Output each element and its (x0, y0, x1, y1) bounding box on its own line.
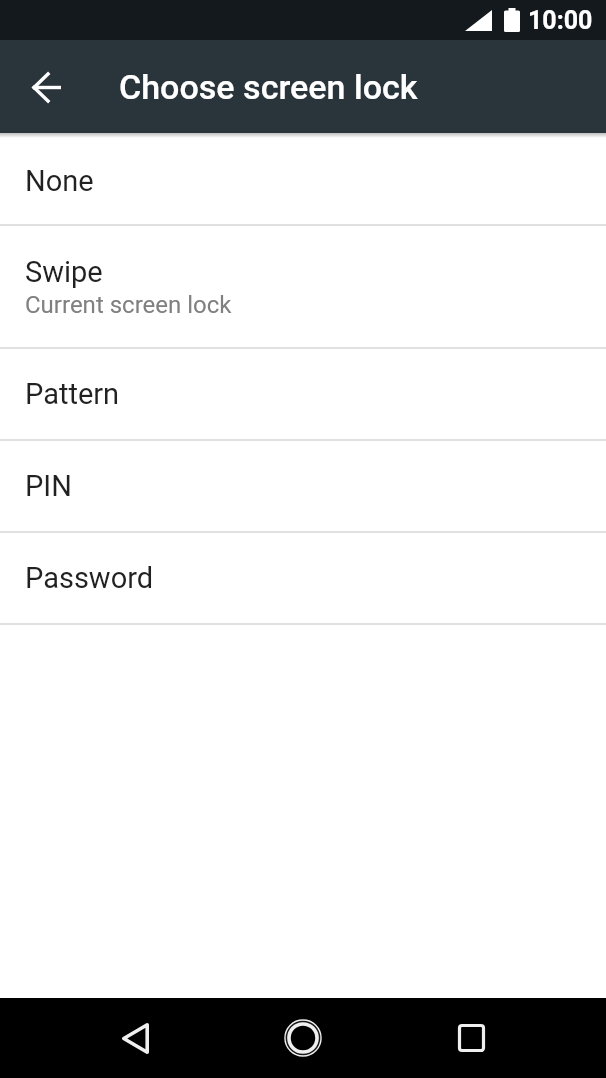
button[interactable] (280, 1015, 326, 1061)
staticText: Pattern (25, 377, 120, 411)
staticText: Choose screen lock (119, 67, 418, 107)
button[interactable] (24, 64, 70, 110)
button[interactable]: Swipe (0, 226, 606, 347)
button[interactable] (112, 1015, 158, 1061)
button[interactable]: Password (0, 533, 606, 623)
staticText: 10:00 (528, 6, 593, 35)
staticText: None (25, 164, 94, 198)
button[interactable]: PIN (0, 441, 606, 531)
staticText: Password (25, 561, 154, 595)
staticText: Current screen lock (25, 291, 232, 319)
button[interactable]: None (0, 138, 606, 224)
staticText: PIN (25, 469, 72, 503)
button[interactable] (448, 1015, 494, 1061)
staticText: Swipe (25, 255, 103, 289)
button[interactable]: Pattern (0, 349, 606, 439)
